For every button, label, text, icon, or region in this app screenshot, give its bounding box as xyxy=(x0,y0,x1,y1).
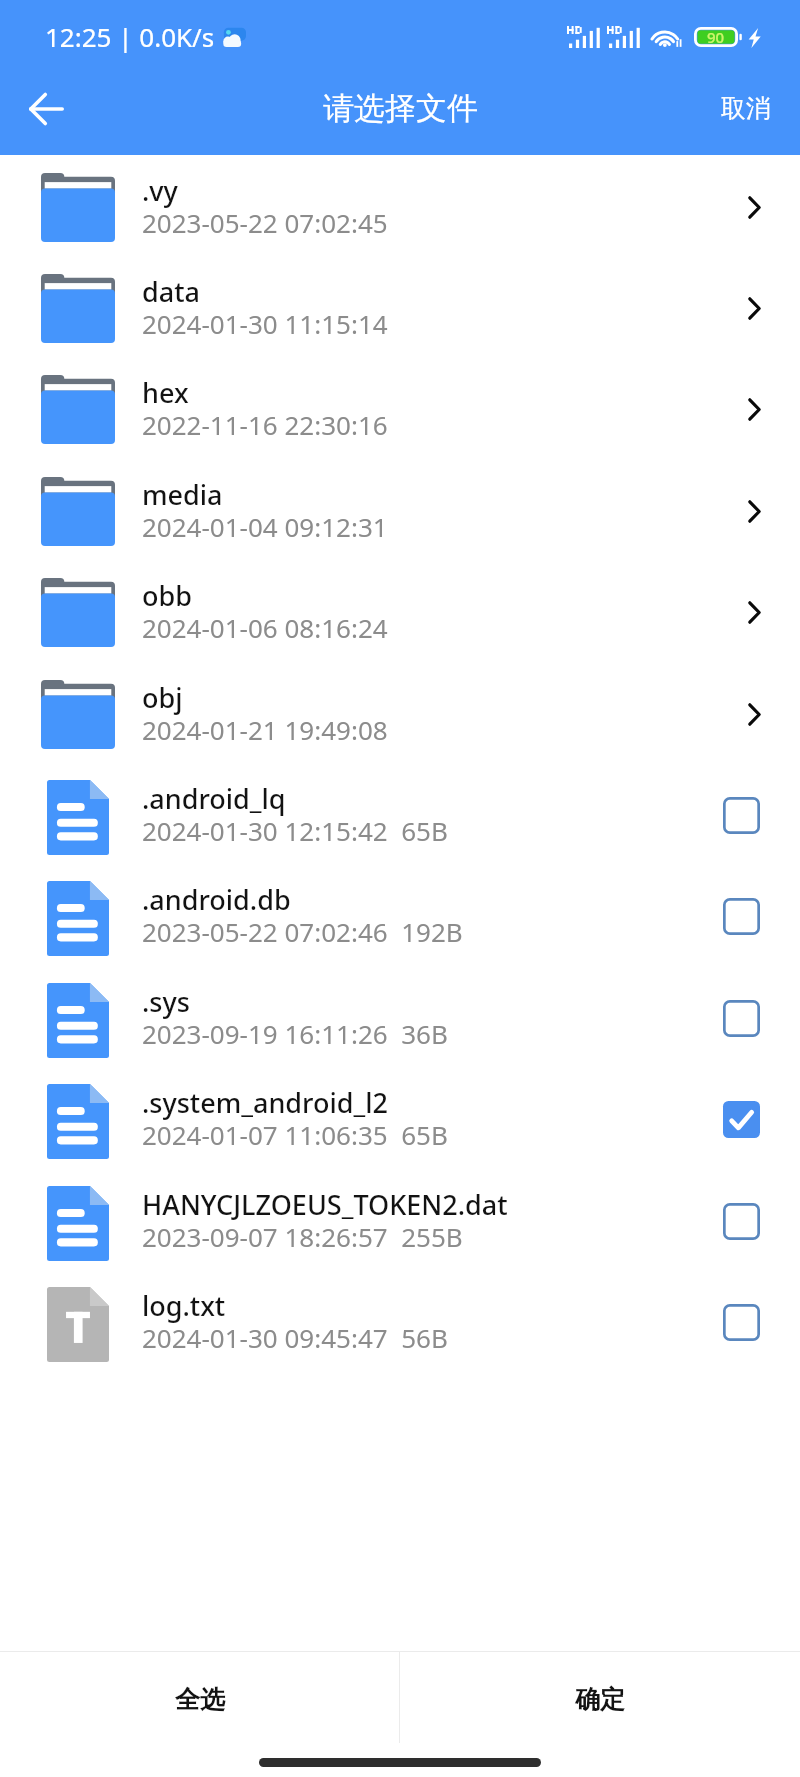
button[interactable]: Open folder xyxy=(724,177,784,237)
staticText: 请选择文件 xyxy=(323,89,478,128)
staticText: 2024-01-30 11:15:14 xyxy=(142,306,388,341)
button[interactable]: Select file xyxy=(713,1294,769,1350)
staticText: 2023-05-22 07:02:46 192B xyxy=(142,914,463,949)
button[interactable]: Open folder xyxy=(724,582,784,642)
button[interactable]: .sys xyxy=(0,967,800,1068)
staticText: 2023-09-19 16:11:26 36B xyxy=(142,1016,448,1051)
staticText: 2023-05-22 07:02:45 xyxy=(142,205,388,240)
staticText: 2022-11-16 22:30:16 xyxy=(142,407,388,442)
button[interactable]: .vy xyxy=(0,156,800,257)
button[interactable]: Select file xyxy=(713,787,769,843)
staticText: 2023-09-07 18:26:57 255B xyxy=(142,1219,463,1254)
button[interactable]: media xyxy=(0,460,800,561)
button[interactable]: Open folder xyxy=(724,379,784,439)
button[interactable]: hex xyxy=(0,358,800,460)
staticText: 确定 xyxy=(575,1684,625,1715)
button[interactable]: obb xyxy=(0,561,800,663)
staticText: data xyxy=(142,273,200,310)
staticText: 2024-01-30 12:15:42 65B xyxy=(142,813,448,848)
button[interactable]: 确定 xyxy=(400,1652,800,1743)
button[interactable]: .android.db xyxy=(0,865,800,967)
staticText: 2024-01-30 09:45:47 56B xyxy=(142,1320,448,1355)
staticText: 90 xyxy=(707,27,725,47)
button[interactable]: Select file xyxy=(713,888,769,944)
staticText: 2024-01-06 08:16:24 xyxy=(142,610,388,645)
staticText: 2024-01-04 09:12:31 xyxy=(142,509,388,544)
staticText: HANYCJLZOEUS_TOKEN2.dat xyxy=(142,1186,508,1223)
button[interactable]: 全选 xyxy=(0,1652,399,1743)
button[interactable]: HANYCJLZOEUS_TOKEN2.dat xyxy=(0,1170,800,1271)
button[interactable]: Select file xyxy=(713,990,769,1046)
staticText: 全选 xyxy=(175,1684,225,1715)
staticText: obb xyxy=(142,577,192,614)
button[interactable]: Back xyxy=(10,73,82,145)
staticText: 取消 xyxy=(721,93,771,124)
button[interactable]: data xyxy=(0,257,800,358)
staticText: 2024-01-21 19:49:08 xyxy=(142,712,388,747)
staticText: .system_android_l2 xyxy=(142,1084,388,1121)
staticText: obj xyxy=(142,679,183,716)
staticText: .vy xyxy=(142,172,178,209)
staticText: .sys xyxy=(142,983,190,1020)
staticText: .android_lq xyxy=(142,780,286,817)
button[interactable]: obj xyxy=(0,663,800,764)
button[interactable]: log.txt xyxy=(0,1271,800,1372)
button[interactable]: Select file xyxy=(713,1193,769,1249)
button[interactable]: Open folder xyxy=(724,481,784,541)
staticText: .android.db xyxy=(142,881,291,918)
button[interactable]: 取消 xyxy=(692,75,800,142)
staticText: 12:25 | 0.0K/s xyxy=(45,19,215,54)
button[interactable]: Open folder xyxy=(724,278,784,338)
staticText: 2024-01-07 11:06:35 65B xyxy=(142,1117,448,1152)
staticText: hex xyxy=(142,374,189,411)
staticText: media xyxy=(142,476,223,513)
button[interactable]: Open folder xyxy=(724,684,784,744)
staticText: log.txt xyxy=(142,1287,226,1324)
button[interactable]: .system_android_l2 xyxy=(0,1068,800,1170)
button[interactable]: .android_lq xyxy=(0,764,800,865)
button[interactable]: Select file xyxy=(713,1091,769,1147)
